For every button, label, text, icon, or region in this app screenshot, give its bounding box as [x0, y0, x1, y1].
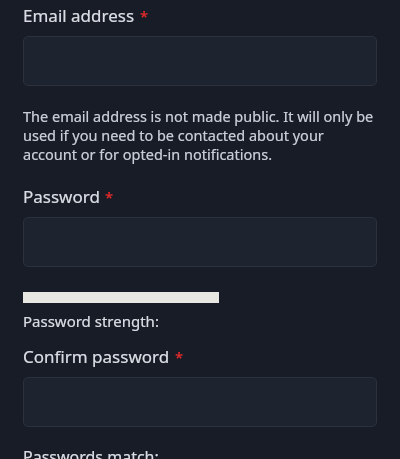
staticText: * [175, 347, 184, 367]
staticText: Passwords match: [23, 446, 159, 459]
staticText: * [105, 187, 114, 207]
staticText: Email address [23, 4, 135, 27]
staticText: Confirm password [23, 345, 170, 368]
staticText: * [140, 6, 149, 26]
staticText: The email address is not made public. It… [23, 106, 377, 164]
staticText: Password [23, 185, 100, 208]
staticText: Password strength: [23, 311, 159, 331]
